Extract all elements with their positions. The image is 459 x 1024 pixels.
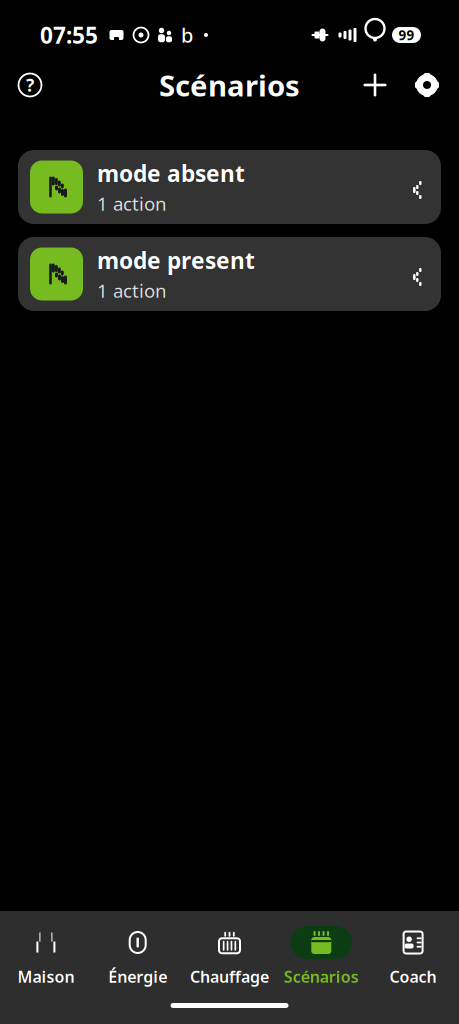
button[interactable]: Chauffage xyxy=(184,926,275,987)
staticText: 99 xyxy=(398,26,414,44)
staticText: 1 action xyxy=(97,278,167,303)
staticText: Maison xyxy=(17,966,74,987)
staticText: ? xyxy=(26,73,34,96)
staticText: Coach xyxy=(390,966,437,987)
button[interactable]: Aide xyxy=(8,63,52,107)
button[interactable]: mode absent xyxy=(18,150,441,224)
button[interactable]: mode present xyxy=(18,237,441,311)
button[interactable]: Scénarios xyxy=(275,926,367,987)
button[interactable]: Énergie xyxy=(92,926,184,987)
button[interactable]: Ajouter un scénario xyxy=(353,63,397,107)
staticText: mode present xyxy=(97,245,255,275)
staticText: b xyxy=(181,22,193,48)
staticText: Scénarios xyxy=(159,65,300,104)
button[interactable]: Réglages xyxy=(405,63,449,107)
staticText: 1 action xyxy=(97,191,167,216)
staticText: Scénarios xyxy=(284,966,359,987)
staticText: Chauffage xyxy=(190,966,269,987)
button[interactable]: Maison xyxy=(0,926,92,987)
staticText: mode absent xyxy=(97,158,245,188)
staticText: 07:55 xyxy=(40,20,98,50)
button[interactable]: Coach xyxy=(367,926,459,987)
staticText: Énergie xyxy=(108,966,167,987)
